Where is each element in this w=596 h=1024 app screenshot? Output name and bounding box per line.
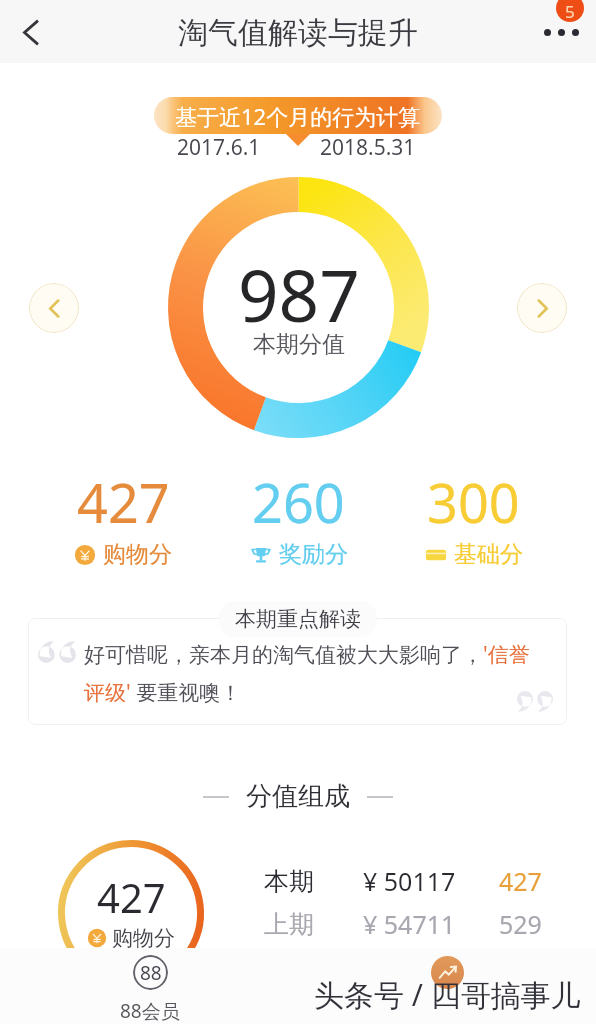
- staticText: 2018.5.31: [320, 133, 416, 162]
- staticText: 427: [499, 864, 542, 898]
- staticText: 购物分: [112, 925, 175, 951]
- staticText: 260: [252, 465, 345, 539]
- staticText: 427: [97, 870, 166, 924]
- staticText: 好可惜呢，亲本月的淘气值被大大影响了，'信誉评级' 要重视噢！: [84, 640, 545, 706]
- staticText: 本期重点解读: [235, 606, 361, 632]
- staticText: 头条号 / 四哥搞事儿: [314, 974, 581, 1015]
- staticText: 本期: [264, 866, 363, 897]
- staticText: ¥ 54711: [363, 907, 499, 941]
- staticText: 上期: [264, 909, 363, 940]
- button[interactable]: Previous period: [29, 283, 79, 333]
- staticText: 淘气值解读与提升: [178, 14, 418, 52]
- button[interactable]: Next period: [517, 283, 567, 333]
- staticText: 529: [499, 907, 542, 941]
- button[interactable]: 427: [35, 465, 211, 569]
- staticText: 购物分: [103, 540, 172, 569]
- staticText: 427: [77, 465, 170, 539]
- button[interactable]: Back: [4, 5, 58, 59]
- staticText: 基础分: [454, 540, 523, 569]
- button[interactable]: 300: [386, 465, 561, 569]
- staticText: 基于近12个月的行为计算: [175, 101, 421, 131]
- staticText: 奖励分: [279, 540, 348, 569]
- staticText: 分值组成: [246, 780, 350, 813]
- staticText: 88会员: [120, 998, 180, 1024]
- staticText: 987: [238, 246, 360, 343]
- staticText: ¥ 50117: [363, 864, 499, 898]
- button[interactable]: 260: [211, 465, 386, 569]
- staticText: 2017.6.1: [177, 133, 261, 162]
- staticText: 5: [565, 0, 575, 22]
- staticText: 88: [140, 960, 162, 986]
- staticText: 300: [427, 465, 520, 539]
- button[interactable]: Trend: [431, 956, 464, 989]
- staticText: 本期分值: [253, 330, 345, 359]
- button[interactable]: 88: [112, 955, 188, 1024]
- button[interactable]: More options: [534, 4, 588, 58]
